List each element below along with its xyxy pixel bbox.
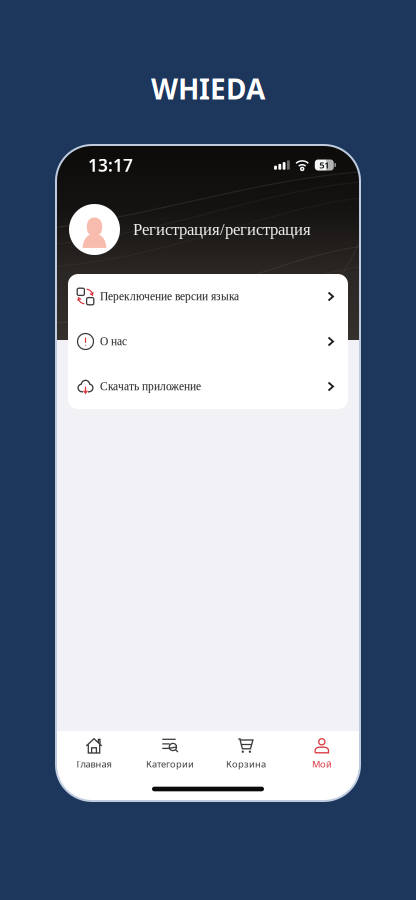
button[interactable]: Главная [56,731,132,777]
staticText: Категории [146,758,194,770]
staticText: Главная [76,758,111,770]
button[interactable]: Переключение версии языка [68,274,348,319]
staticText: Корзина [226,758,266,770]
staticText: О нас [100,335,127,348]
staticText: 13:17 [88,153,133,176]
staticText: WHIEDA [151,70,265,107]
button[interactable]: Корзина [208,731,284,777]
button[interactable]: Мой [284,731,360,777]
staticText: Переключение версии языка [100,290,239,303]
staticText: Регистрация/регистрация [133,220,311,239]
staticText: Мой [312,758,332,770]
staticText: 51 [319,159,329,171]
button[interactable]: Скачать приложение [68,364,348,409]
button[interactable]: Категории [132,731,208,777]
staticText: Скачать приложение [100,380,201,393]
button[interactable]: О нас [68,319,348,364]
